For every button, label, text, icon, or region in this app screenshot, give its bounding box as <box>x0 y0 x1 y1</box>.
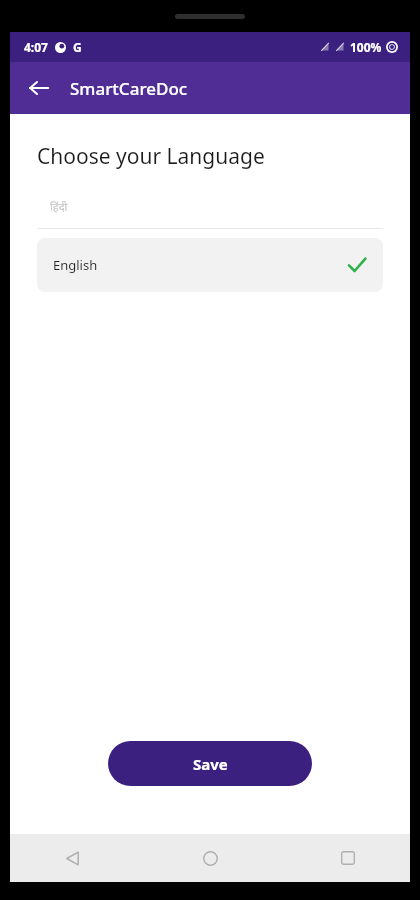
button[interactable]: Back <box>50 836 94 880</box>
button[interactable]: English <box>37 238 383 292</box>
staticText: G <box>73 39 82 55</box>
staticText: 100% <box>350 39 382 55</box>
button[interactable]: Home <box>188 836 232 880</box>
staticText: Choose your Language <box>37 142 265 171</box>
staticText: SmartCareDoc <box>70 77 188 100</box>
button[interactable]: Back <box>18 67 60 109</box>
staticText: English <box>53 256 98 274</box>
button[interactable]: Save <box>108 741 312 786</box>
staticText: 4:07 <box>24 39 48 55</box>
button[interactable]: Recent apps <box>326 836 370 880</box>
staticText: हिंदी <box>50 199 68 214</box>
staticText: Save <box>193 754 228 774</box>
